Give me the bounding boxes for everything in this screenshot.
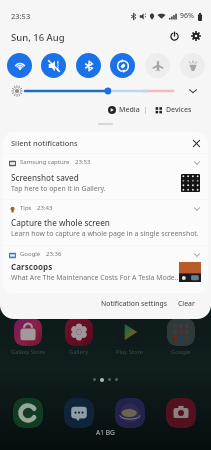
button[interactable]: Phone [13, 398, 43, 428]
staticText: Learn how to capture a whole page in a s… [11, 229, 199, 238]
button[interactable]: Tips [3, 200, 208, 245]
button[interactable]: Clear [175, 296, 198, 311]
button[interactable]: Dismiss silent notifications [189, 136, 203, 150]
staticText: Gallery [69, 348, 89, 356]
staticText: Play Store [116, 348, 144, 356]
staticText: 96% [180, 11, 194, 21]
staticText: Screenshot saved [11, 172, 79, 183]
staticText: Samsung capture [20, 158, 70, 166]
button[interactable]: Wi-Fi [7, 53, 32, 78]
staticText: A1 BG [96, 428, 115, 437]
button[interactable]: Expand notification [190, 248, 203, 261]
staticText: Tips [20, 204, 32, 212]
staticText: 23:43 [37, 204, 53, 212]
staticText: Clear [178, 299, 195, 308]
button[interactable]: Samsung capture [3, 154, 208, 199]
staticText: Sun, 16 Aug [11, 31, 65, 44]
button[interactable]: Gallery [65, 318, 93, 346]
staticText: Devices [166, 105, 192, 115]
staticText: Notification settings [101, 299, 167, 308]
button[interactable]: Flight mode [145, 53, 170, 78]
staticText: What Are The Maintenance Costs For A Tes… [11, 273, 179, 282]
button[interactable]: Devices [153, 104, 194, 116]
button[interactable]: Google [3, 246, 208, 293]
staticText: Galaxy Store [11, 348, 46, 356]
button[interactable]: Brightness [25, 84, 173, 98]
button[interactable]: Messages [64, 398, 94, 428]
button[interactable]: Expand quick settings [186, 84, 200, 98]
button[interactable]: Auto rotate [110, 53, 135, 78]
button[interactable]: Flashlight [180, 53, 205, 78]
button[interactable]: Media [106, 104, 142, 116]
staticText: 23:53 [75, 158, 91, 166]
staticText: Capture the whole screen [11, 217, 110, 228]
staticText: Silent notifications [11, 138, 78, 148]
staticText: Tap here to open it in Gallery. [11, 184, 106, 193]
staticText: Google [20, 250, 41, 258]
button[interactable]: Notification settings [98, 296, 170, 311]
staticText: Media [119, 105, 140, 115]
button[interactable]: Internet [115, 398, 145, 428]
button[interactable]: Galaxy Store [14, 318, 42, 346]
staticText: 23:36 [46, 250, 62, 258]
staticText: 23:53 [11, 11, 31, 21]
button[interactable]: Power [166, 29, 182, 43]
button[interactable]: Settings [188, 29, 204, 43]
button[interactable]: Expand notification [190, 156, 203, 169]
staticText: Google [171, 348, 191, 356]
button[interactable]: Expand notification [190, 202, 203, 215]
button[interactable]: Google [167, 318, 195, 346]
button[interactable]: Sound off [41, 53, 66, 78]
button[interactable]: Play Store [116, 318, 144, 346]
button[interactable]: Bluetooth [76, 53, 101, 78]
staticText: Carscoops [11, 261, 53, 272]
button[interactable]: Camera [166, 398, 196, 428]
